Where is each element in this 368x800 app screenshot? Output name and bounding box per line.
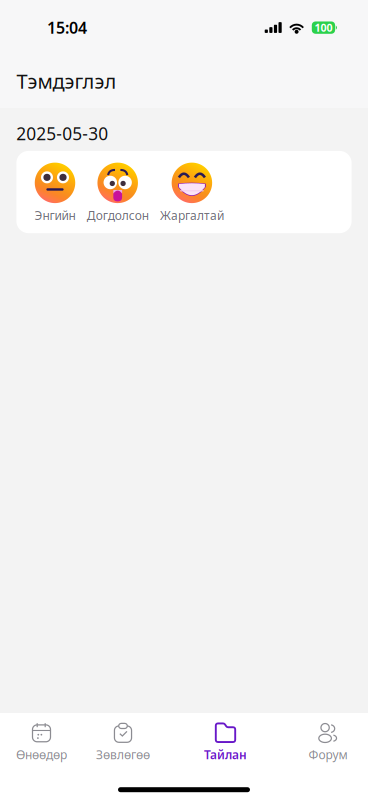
- staticText: Зөвлөгөө: [96, 747, 150, 762]
- staticText: Догдолсон: [87, 207, 149, 223]
- button[interactable]: Зөвлөгөө: [83, 713, 163, 761]
- staticText: Энгийн: [34, 207, 75, 223]
- button[interactable]: Догдолсон: [87, 163, 149, 223]
- staticText: Тэмдэглэл: [16, 68, 116, 94]
- staticText: 2025-05-30: [16, 122, 108, 145]
- staticText: Тайлан: [204, 747, 247, 762]
- button[interactable]: Жаргалтай: [160, 163, 224, 223]
- staticText: 100: [314, 20, 332, 35]
- staticText: Форум: [308, 747, 347, 762]
- button[interactable]: Тайлан: [163, 713, 288, 761]
- staticText: Өнөөдөр: [16, 747, 67, 762]
- button[interactable]: Өнөөдөр: [0, 713, 83, 761]
- button[interactable]: Форум: [288, 713, 368, 761]
- staticText: Жаргалтай: [160, 207, 224, 223]
- button[interactable]: Энгийн: [34, 163, 75, 223]
- staticText: 15:04: [47, 17, 87, 38]
